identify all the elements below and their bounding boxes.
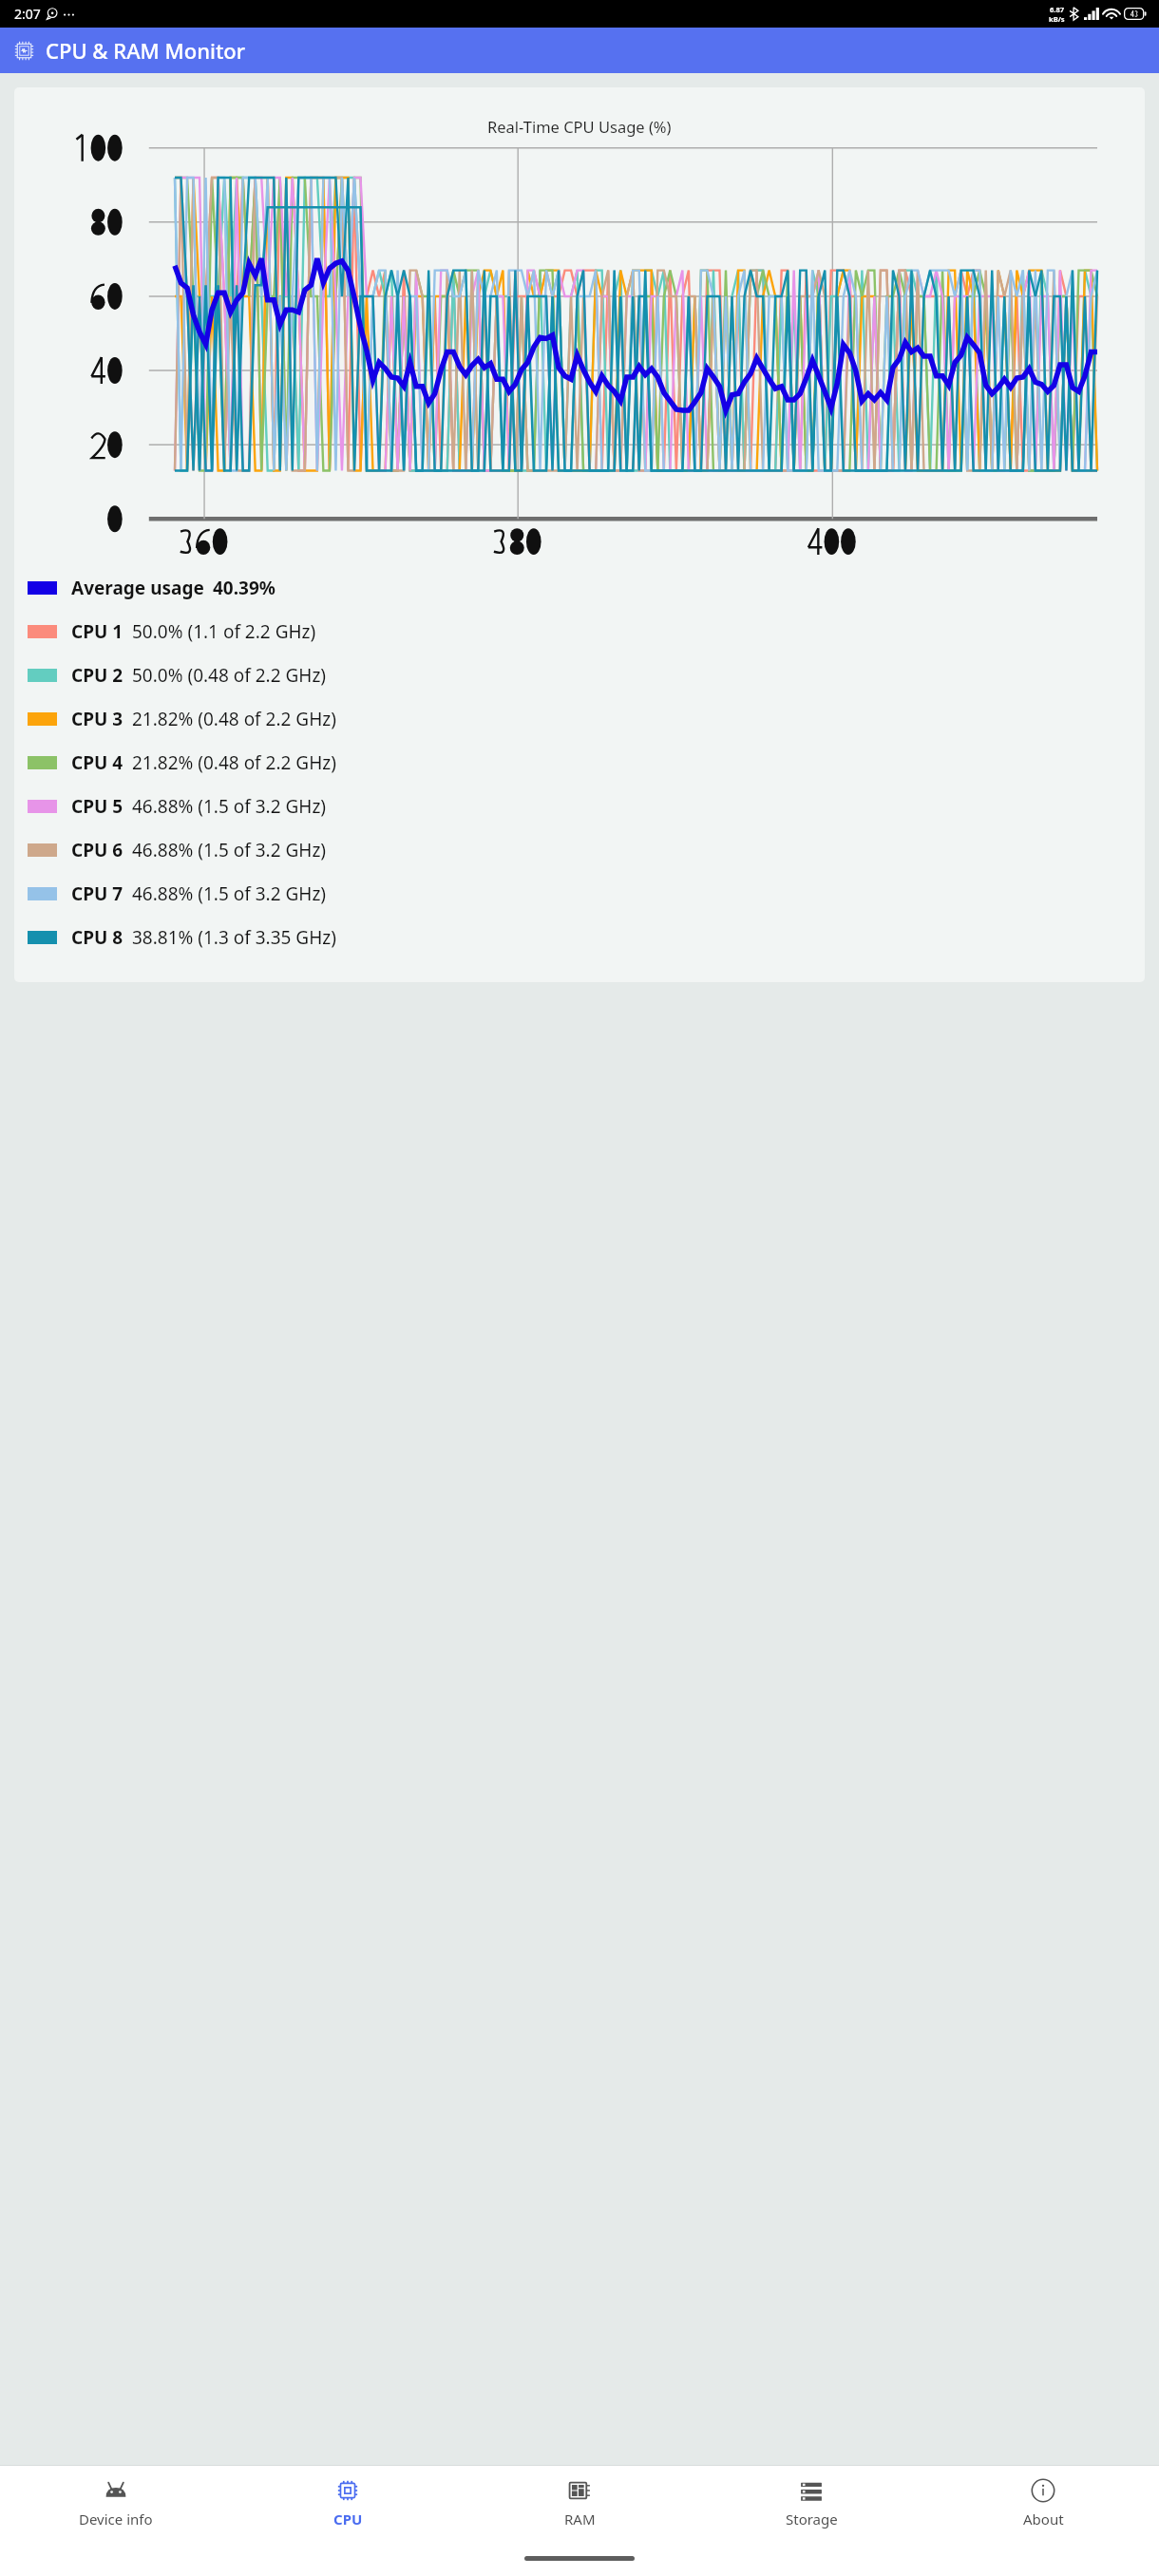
button[interactable]: CPU 6 (14, 828, 1145, 872)
staticText: 38.81% (1.3 of 3.35 GHz) (132, 925, 336, 950)
button[interactable]: CPU 7 (14, 872, 1145, 916)
button[interactable]: CPU 8 (14, 916, 1145, 959)
staticText: kB/s (1049, 14, 1065, 24)
staticText: CPU 8 (71, 925, 123, 950)
staticText: Storage (786, 2510, 838, 2529)
staticText: 50.0% (0.48 of 2.2 GHz) (132, 663, 327, 688)
staticText: 2:07 (14, 5, 41, 23)
staticText: CPU & RAM Monitor (46, 36, 246, 65)
staticText: CPU 4 (71, 750, 123, 775)
button[interactable]: About (927, 2466, 1159, 2540)
staticText: CPU 5 (71, 794, 123, 819)
staticText: CPU 7 (71, 881, 123, 906)
button[interactable]: CPU 1 (14, 610, 1145, 653)
staticText: CPU 3 (71, 707, 123, 731)
staticText: 40.39% (213, 576, 275, 600)
staticText: 50.0% (1.1 of 2.2 GHz) (132, 619, 316, 644)
staticText: 46.88% (1.5 of 3.2 GHz) (132, 794, 327, 819)
staticText: CPU 1 (71, 619, 123, 644)
staticText: Real-Time CPU Usage (%) (487, 116, 672, 137)
button[interactable]: CPU 2 (14, 653, 1145, 697)
button[interactable]: Storage (695, 2466, 927, 2540)
button[interactable]: CPU 4 (14, 741, 1145, 785)
button[interactable]: Device info (0, 2466, 232, 2540)
staticText: 21.82% (0.48 of 2.2 GHz) (132, 707, 336, 731)
button[interactable]: RAM (464, 2466, 695, 2540)
button[interactable]: CPU (232, 2466, 464, 2540)
button[interactable]: CPU 5 (14, 785, 1145, 828)
staticText: About (1023, 2510, 1064, 2529)
staticText: Average usage (71, 576, 204, 600)
staticText: 46.88% (1.5 of 3.2 GHz) (132, 881, 327, 906)
button[interactable]: CPU 3 (14, 697, 1145, 741)
staticText: 46.88% (1.5 of 3.2 GHz) (132, 838, 327, 862)
staticText: 21.82% (0.48 of 2.2 GHz) (132, 750, 336, 775)
staticText: RAM (564, 2510, 596, 2529)
other: App icon (13, 40, 35, 62)
staticText: CPU 2 (71, 663, 123, 688)
staticText: CPU 6 (71, 838, 123, 862)
staticText: Device info (79, 2510, 153, 2529)
staticText: CPU (333, 2510, 363, 2529)
button[interactable]: Average usage (14, 566, 1145, 610)
staticText: 6.87 (1050, 5, 1064, 14)
